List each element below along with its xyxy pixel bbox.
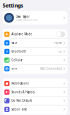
- staticText: Wi-Fi: [11, 41, 17, 45]
- staticText: Home: [54, 41, 62, 45]
- staticText: Do Not Disturb: [11, 99, 32, 102]
- staticText: Screen Time: [11, 108, 27, 111]
- button[interactable]: Wi-Fi: [3, 39, 67, 47]
- staticText: Not Connected: [40, 67, 62, 70]
- button[interactable]: Notifications: [3, 79, 67, 88]
- staticText: Notifications: [11, 82, 28, 85]
- staticText: Settings: [3, 2, 24, 9]
- staticText: Dave Taylor: [16, 15, 30, 18]
- button[interactable]: Dave Taylor: [3, 12, 67, 24]
- staticText: Apple ID, iCloud, Media & Purchases: [16, 19, 39, 21]
- staticText: Sounds & Haptics: [11, 90, 34, 94]
- button[interactable]: Airplane Mode: [3, 30, 67, 38]
- staticText: Cellular: [11, 58, 22, 62]
- button[interactable]: Do Not Disturb: [3, 97, 67, 105]
- staticText: VPN: [11, 67, 17, 70]
- button[interactable]: Sounds & Haptics: [3, 88, 67, 96]
- staticText: Bluetooth: [11, 50, 26, 53]
- button[interactable]: VPN: [3, 65, 67, 73]
- staticText: Airplane Mode: [11, 32, 32, 36]
- button[interactable]: Screen Time: [3, 105, 67, 113]
- staticText: On: [58, 50, 62, 53]
- button[interactable]: Bluetooth: [3, 47, 67, 56]
- button[interactable]: Cellular: [3, 56, 67, 64]
